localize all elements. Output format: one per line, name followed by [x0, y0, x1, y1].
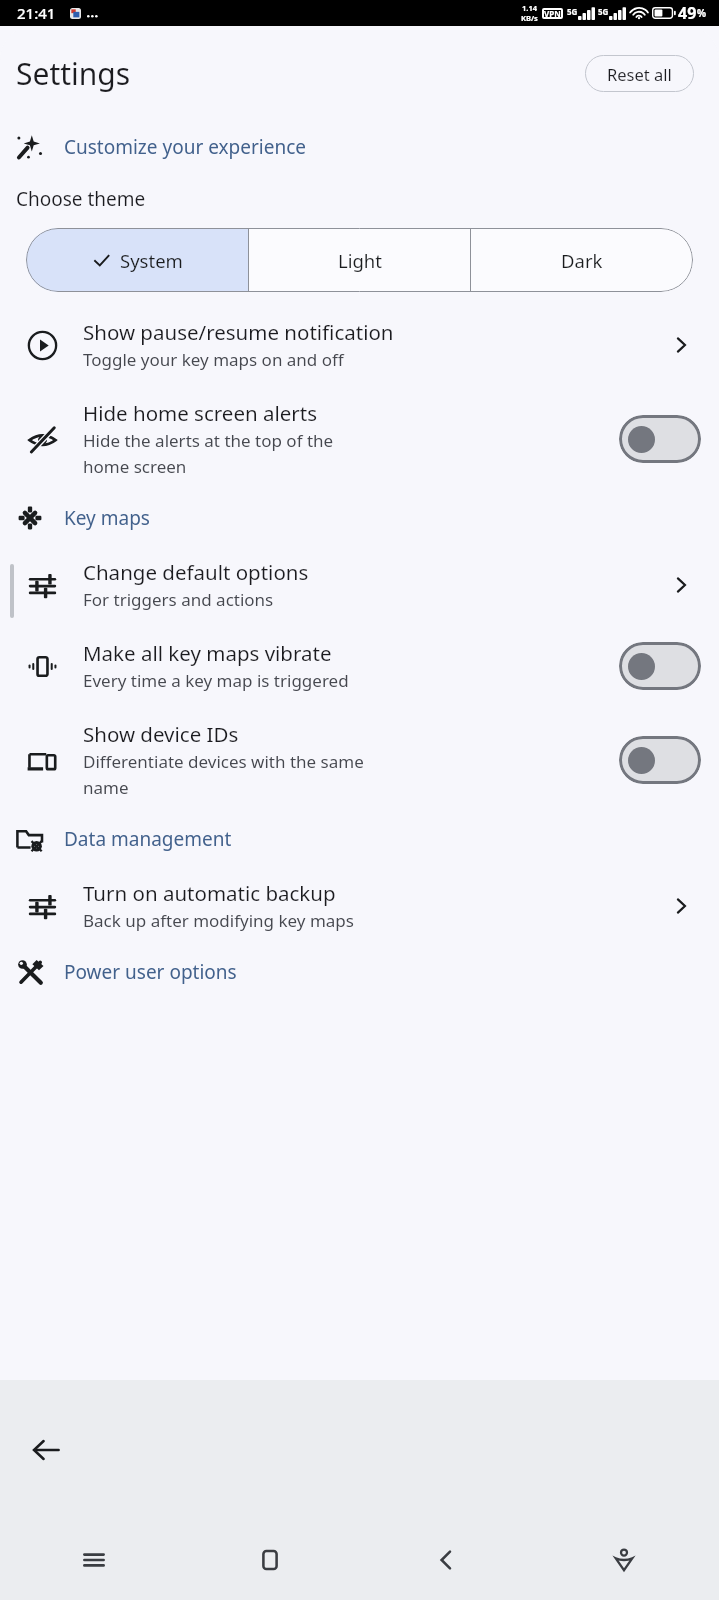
- staticText: Make all key maps vibrate: [83, 639, 332, 667]
- button[interactable]: Dark: [471, 228, 693, 292]
- staticText: 1.14: [522, 3, 537, 13]
- staticText: Every time a key map is triggered: [83, 669, 349, 692]
- button[interactable]: Recents: [68, 1534, 120, 1586]
- staticText: Show pause/resume notification: [83, 318, 394, 346]
- staticText: Dark: [561, 248, 603, 273]
- staticText: Turn on automatic backup: [83, 879, 336, 907]
- staticText: KB/s: [521, 13, 538, 23]
- button[interactable]: Make all key maps vibrate: [0, 625, 719, 706]
- staticText: Hide the alerts at the top of the home s…: [83, 429, 334, 478]
- button[interactable]: Show pause/resume notification: [0, 304, 719, 385]
- staticText: Hide home screen alerts: [83, 399, 317, 427]
- button[interactable]: Show device IDs: [0, 706, 719, 813]
- staticText: Key maps: [64, 505, 150, 531]
- staticText: Change default options: [83, 558, 309, 586]
- other: Open: [661, 886, 701, 926]
- staticText: Choose theme: [16, 186, 146, 212]
- button[interactable]: Change default options: [0, 544, 719, 625]
- button[interactable]: Back: [421, 1534, 473, 1586]
- staticText: 21:41: [17, 3, 56, 23]
- button[interactable]: Back: [22, 1426, 70, 1474]
- button[interactable]: Toggle: [619, 415, 701, 463]
- other: Open: [661, 565, 701, 605]
- other: Open: [661, 325, 701, 365]
- staticText: Customize your experience: [64, 134, 307, 160]
- button[interactable]: Reset all: [585, 55, 694, 92]
- button[interactable]: Accessibility: [598, 1534, 650, 1586]
- button[interactable]: Toggle: [619, 642, 701, 690]
- staticText: System: [120, 248, 183, 273]
- button[interactable]: Light: [249, 228, 471, 292]
- staticText: 5G: [567, 6, 578, 17]
- staticText: 5G: [598, 6, 609, 17]
- staticText: Settings: [16, 53, 131, 94]
- staticText: Data management: [64, 826, 232, 852]
- staticText: Power user options: [64, 959, 237, 985]
- staticText: Differentiate devices with the same name: [83, 750, 364, 799]
- staticText: Back up after modifying key maps: [83, 909, 354, 932]
- staticText: Reset all: [607, 63, 672, 85]
- staticText: VPN: [544, 8, 561, 19]
- staticText: Light: [338, 248, 382, 273]
- button[interactable]: Turn on automatic backup: [0, 865, 719, 946]
- staticText: Show device IDs: [83, 720, 239, 748]
- staticText: %: [697, 6, 707, 20]
- button[interactable]: System: [26, 228, 249, 292]
- staticText: 49: [678, 2, 697, 24]
- staticText: Toggle your key maps on and off: [83, 348, 344, 371]
- button[interactable]: Hide home screen alerts: [0, 385, 719, 492]
- staticText: For triggers and actions: [83, 588, 274, 611]
- button[interactable]: Toggle: [619, 736, 701, 784]
- button[interactable]: Home: [244, 1534, 296, 1586]
